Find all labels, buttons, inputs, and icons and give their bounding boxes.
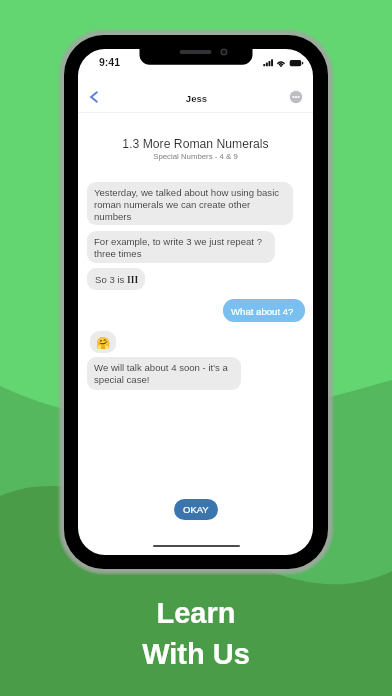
staticText: What about 4? bbox=[231, 306, 294, 317]
button[interactable]: Back bbox=[82, 85, 106, 109]
staticText: 9:41 bbox=[99, 56, 121, 68]
button[interactable]: So 3 is III bbox=[87, 268, 145, 290]
staticText: For example, to write 3 we just repeat ?… bbox=[94, 236, 271, 259]
staticText: With Us bbox=[0, 638, 392, 696]
staticText: We will talk about 4 soon - it's a speci… bbox=[94, 362, 237, 385]
button[interactable]: What about 4? bbox=[223, 299, 305, 322]
staticText: Jess bbox=[79, 93, 313, 555]
button[interactable]: For example, to write 3 we just repeat ?… bbox=[87, 231, 275, 263]
button[interactable]: Yesterday, we talked about how using bas… bbox=[87, 182, 293, 225]
staticText: Yesterday, we talked about how using bas… bbox=[94, 187, 289, 222]
staticText: OKAY bbox=[183, 504, 209, 515]
staticText: So 3 is III bbox=[95, 274, 139, 285]
button[interactable]: OKAY bbox=[174, 499, 218, 520]
staticText: 🤗 bbox=[96, 336, 111, 349]
staticText: Learn bbox=[0, 597, 392, 696]
button[interactable]: We will talk about 4 soon - it's a speci… bbox=[87, 357, 241, 390]
staticText: Special Numbers - 4 & 9 bbox=[78, 152, 313, 555]
staticText: 1.3 More Roman Numerals bbox=[78, 137, 313, 555]
button[interactable]: More options bbox=[284, 85, 308, 109]
button[interactable]: 🤗 bbox=[90, 331, 116, 353]
